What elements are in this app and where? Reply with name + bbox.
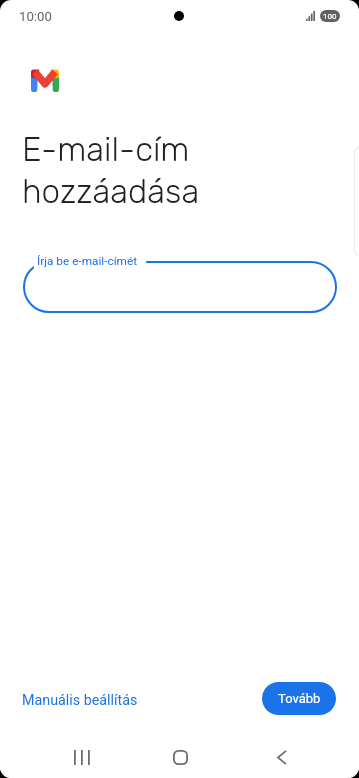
button[interactable]: Manuális beállítás bbox=[22, 692, 138, 709]
staticText: Tovább bbox=[278, 691, 321, 706]
staticText: 10:00 bbox=[19, 9, 52, 24]
button[interactable]: Tovább bbox=[262, 682, 336, 715]
button[interactable]: Recent apps bbox=[56, 733, 105, 778]
staticText: Írja be e-mail-címét bbox=[37, 254, 138, 268]
button[interactable]: Home bbox=[156, 733, 205, 778]
staticText: Manuális beállítás bbox=[22, 692, 138, 709]
button[interactable]: Back bbox=[257, 733, 306, 778]
button[interactable] bbox=[23, 261, 337, 313]
staticText: 100 bbox=[323, 12, 337, 21]
staticText: E-mail-cím hozzáadása bbox=[22, 130, 200, 212]
